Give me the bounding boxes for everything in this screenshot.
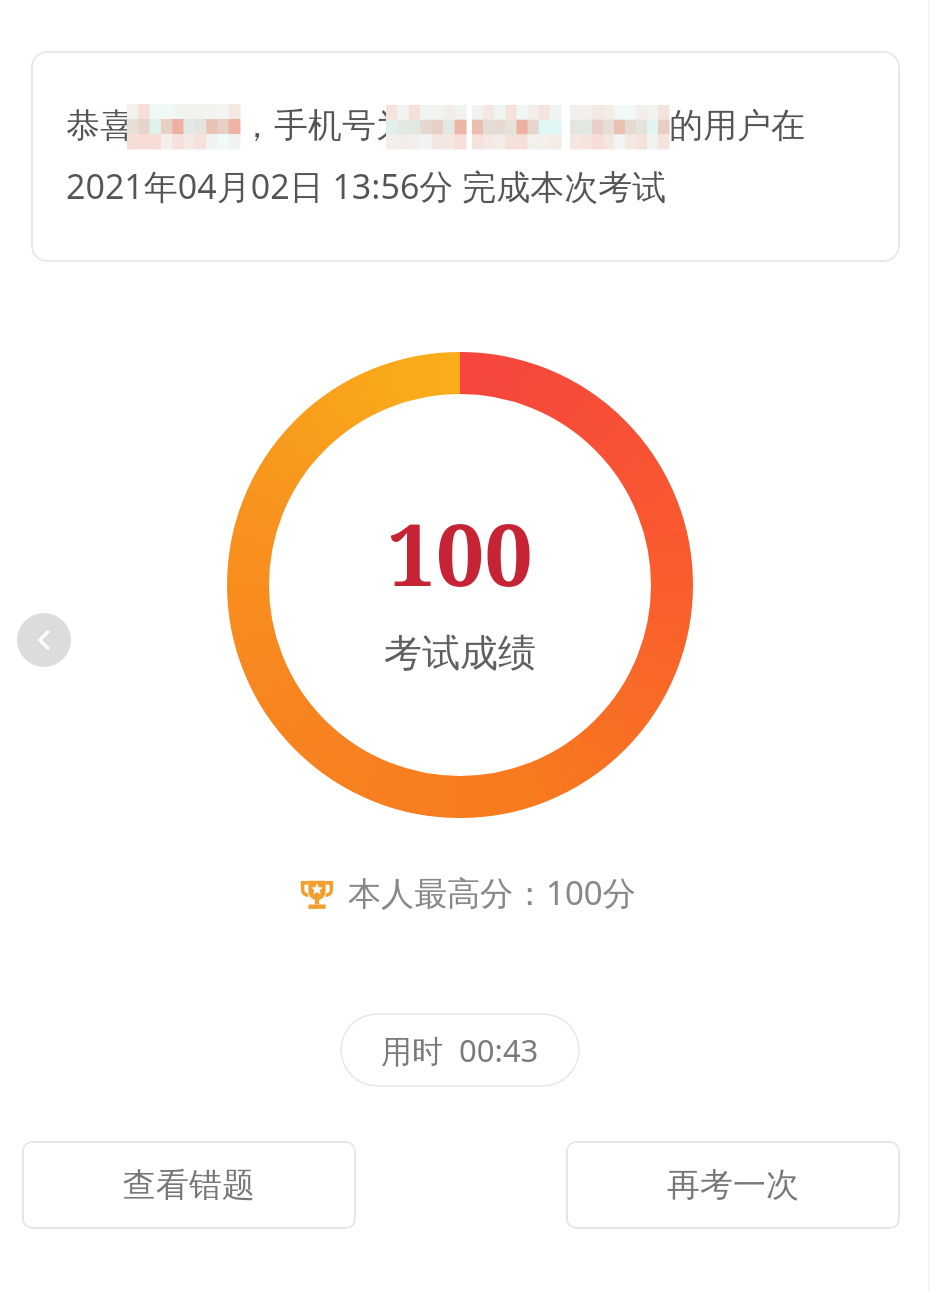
staticText: 2021年04月02日 13:56分 完成本次考试 bbox=[66, 163, 667, 209]
staticText: 100 bbox=[387, 494, 533, 611]
button[interactable]: 再考一次 bbox=[566, 1141, 900, 1229]
staticText: 查看错题 bbox=[123, 1164, 255, 1206]
staticText: ，手机号为 bbox=[240, 104, 410, 147]
button[interactable]: Back bbox=[17, 613, 71, 667]
button[interactable]: 查看错题 bbox=[22, 1141, 356, 1229]
button[interactable]: 用时 00:43 bbox=[340, 1013, 580, 1087]
staticText: 本人最高分：100分 bbox=[348, 870, 636, 915]
staticText: 再考一次 bbox=[667, 1164, 799, 1206]
staticText: 的用户在 bbox=[669, 104, 805, 147]
staticText: 用时 00:43 bbox=[381, 1029, 539, 1071]
staticText: 考试成绩 bbox=[384, 629, 536, 677]
staticText: 恭喜 bbox=[66, 104, 134, 147]
